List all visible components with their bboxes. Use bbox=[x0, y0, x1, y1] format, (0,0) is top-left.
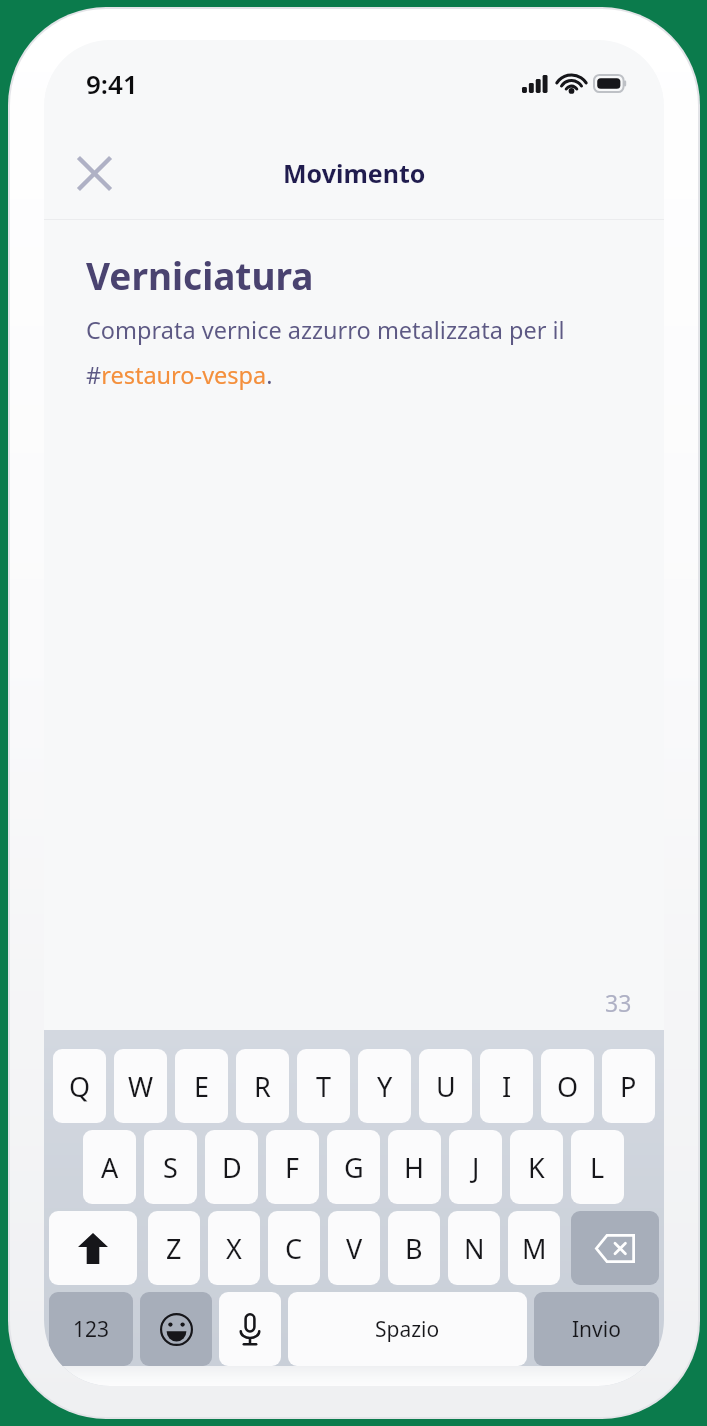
button[interactable]: Q bbox=[53, 1049, 106, 1123]
button[interactable]: W bbox=[114, 1049, 167, 1123]
staticText: U bbox=[436, 1068, 456, 1105]
staticText: O bbox=[557, 1068, 579, 1105]
staticText: L bbox=[590, 1149, 605, 1186]
staticText: D bbox=[222, 1149, 242, 1186]
button[interactable]: Z bbox=[148, 1211, 200, 1285]
staticText: C bbox=[285, 1230, 303, 1267]
staticText: N bbox=[464, 1230, 485, 1267]
staticText: Spazio bbox=[375, 1315, 440, 1344]
button[interactable]: V bbox=[328, 1211, 380, 1285]
button[interactable]: I bbox=[480, 1049, 533, 1123]
button[interactable]: E bbox=[175, 1049, 228, 1123]
staticText: J bbox=[472, 1149, 480, 1186]
button[interactable]: T bbox=[297, 1049, 350, 1123]
button[interactable]: X bbox=[208, 1211, 260, 1285]
staticText: 123 bbox=[73, 1315, 110, 1344]
staticText: I bbox=[502, 1068, 512, 1105]
staticText: Z bbox=[166, 1230, 182, 1267]
staticText: K bbox=[528, 1149, 545, 1186]
button[interactable]: Spazio bbox=[288, 1292, 527, 1366]
staticText: F bbox=[285, 1149, 300, 1186]
staticText: W bbox=[128, 1068, 154, 1105]
button[interactable]: Invio bbox=[534, 1292, 659, 1366]
staticText: G bbox=[344, 1149, 364, 1186]
staticText: S bbox=[163, 1149, 178, 1186]
staticText: Verniciatura bbox=[86, 250, 314, 300]
button[interactable]: B bbox=[388, 1211, 440, 1285]
button[interactable]: F bbox=[266, 1130, 319, 1204]
staticText: B bbox=[405, 1230, 423, 1267]
staticText: H bbox=[404, 1149, 425, 1186]
button[interactable]: N bbox=[448, 1211, 500, 1285]
button[interactable]: 123 bbox=[49, 1292, 133, 1366]
button[interactable]: L bbox=[571, 1130, 624, 1204]
staticText: 9:41 bbox=[86, 66, 138, 101]
staticText: Invio bbox=[572, 1315, 621, 1344]
button[interactable]: Y bbox=[358, 1049, 411, 1123]
button[interactable]: S bbox=[144, 1130, 197, 1204]
button[interactable]: Cancella bbox=[571, 1211, 659, 1285]
staticText: R bbox=[254, 1068, 271, 1105]
staticText: E bbox=[194, 1068, 210, 1105]
staticText: M bbox=[522, 1230, 547, 1267]
button[interactable]: O bbox=[541, 1049, 594, 1123]
button[interactable]: J bbox=[449, 1130, 502, 1204]
staticText: Comprata vernice azzurro metalizzata per… bbox=[86, 314, 636, 391]
button[interactable]: Emoji bbox=[140, 1292, 212, 1366]
staticText: X bbox=[226, 1230, 242, 1267]
button[interactable]: Dettatura bbox=[219, 1292, 281, 1366]
button[interactable]: Chiudi bbox=[62, 141, 126, 205]
button[interactable]: Maiuscole bbox=[49, 1211, 137, 1285]
button[interactable]: H bbox=[388, 1130, 441, 1204]
button[interactable]: G bbox=[327, 1130, 380, 1204]
button[interactable]: D bbox=[205, 1130, 258, 1204]
button[interactable]: P bbox=[602, 1049, 655, 1123]
staticText: 33 bbox=[605, 987, 632, 1018]
staticText: P bbox=[620, 1068, 637, 1105]
button[interactable]: U bbox=[419, 1049, 472, 1123]
button[interactable]: A bbox=[83, 1130, 136, 1204]
staticText: V bbox=[346, 1230, 363, 1267]
staticText: Y bbox=[377, 1068, 393, 1105]
staticText: Movimento bbox=[283, 156, 426, 190]
button[interactable]: C bbox=[268, 1211, 320, 1285]
button[interactable]: R bbox=[236, 1049, 289, 1123]
button[interactable]: K bbox=[510, 1130, 563, 1204]
button[interactable]: M bbox=[508, 1211, 560, 1285]
staticText: T bbox=[316, 1068, 332, 1105]
staticText: Q bbox=[69, 1068, 91, 1105]
staticText: A bbox=[101, 1149, 119, 1186]
